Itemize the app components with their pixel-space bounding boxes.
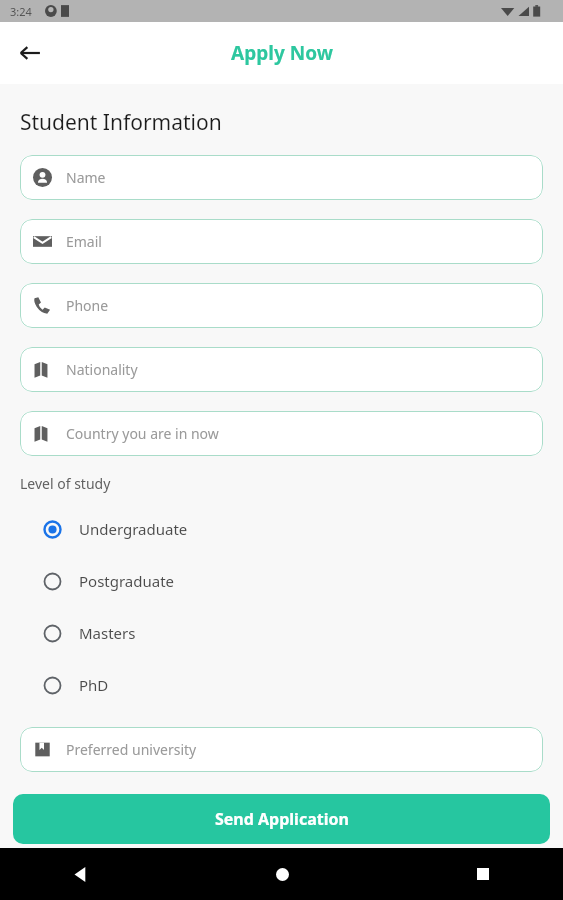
button[interactable]: Name: [20, 155, 543, 200]
button[interactable]: Email: [20, 219, 543, 264]
button[interactable]: Back: [60, 854, 100, 894]
button[interactable]: Postgraduate: [0, 555, 563, 607]
button[interactable]: Back: [8, 31, 52, 75]
button[interactable]: Recents: [463, 854, 503, 894]
staticText: Send Application: [215, 808, 349, 830]
button[interactable]: Preferred university: [20, 727, 543, 772]
staticText: Undergraduate: [79, 519, 188, 539]
staticText: Preferred university: [66, 740, 197, 759]
staticText: Level of study: [20, 474, 111, 493]
staticText: 3:24: [10, 4, 32, 19]
staticText: Nationality: [66, 360, 138, 379]
staticText: Email: [66, 232, 102, 251]
button[interactable]: Country you are in now: [20, 411, 543, 456]
staticText: Country you are in now: [66, 424, 219, 443]
button[interactable]: Send Application: [13, 794, 550, 844]
button[interactable]: Nationality: [20, 347, 543, 392]
staticText: Phone: [66, 296, 109, 315]
button[interactable]: Phone: [20, 283, 543, 328]
button[interactable]: Home: [262, 854, 302, 894]
staticText: Student Information: [20, 108, 222, 137]
staticText: PhD: [79, 675, 109, 695]
staticText: Apply Now: [231, 40, 333, 66]
staticText: Postgraduate: [79, 571, 175, 591]
staticText: Masters: [79, 623, 136, 643]
button[interactable]: Masters: [0, 607, 563, 659]
button[interactable]: Undergraduate: [0, 503, 563, 555]
staticText: Name: [66, 168, 106, 187]
button[interactable]: PhD: [0, 659, 563, 711]
